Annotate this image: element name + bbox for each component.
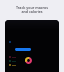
staticText: Track your macros and calories xyxy=(0,5,64,14)
button[interactable] xyxy=(9,56,16,58)
button[interactable] xyxy=(9,64,16,66)
button[interactable] xyxy=(15,48,31,51)
button[interactable] xyxy=(9,60,16,62)
